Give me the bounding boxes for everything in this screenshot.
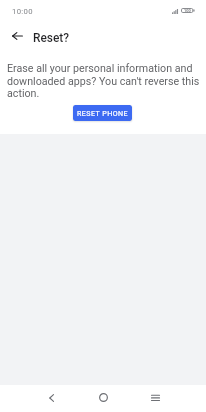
button[interactable]: Back [37, 384, 65, 411]
button[interactable]: Recent apps [141, 384, 169, 411]
staticText: 100 [184, 8, 191, 13]
staticText: RESET PHONE [77, 109, 129, 117]
staticText: Reset? [33, 31, 70, 45]
button[interactable]: RESET PHONE [73, 105, 132, 121]
staticText: 10:00 [12, 7, 33, 16]
button[interactable]: Home [89, 384, 117, 411]
staticText: Erase all your personal information and … [7, 62, 205, 99]
button[interactable]: Back [3, 22, 31, 50]
